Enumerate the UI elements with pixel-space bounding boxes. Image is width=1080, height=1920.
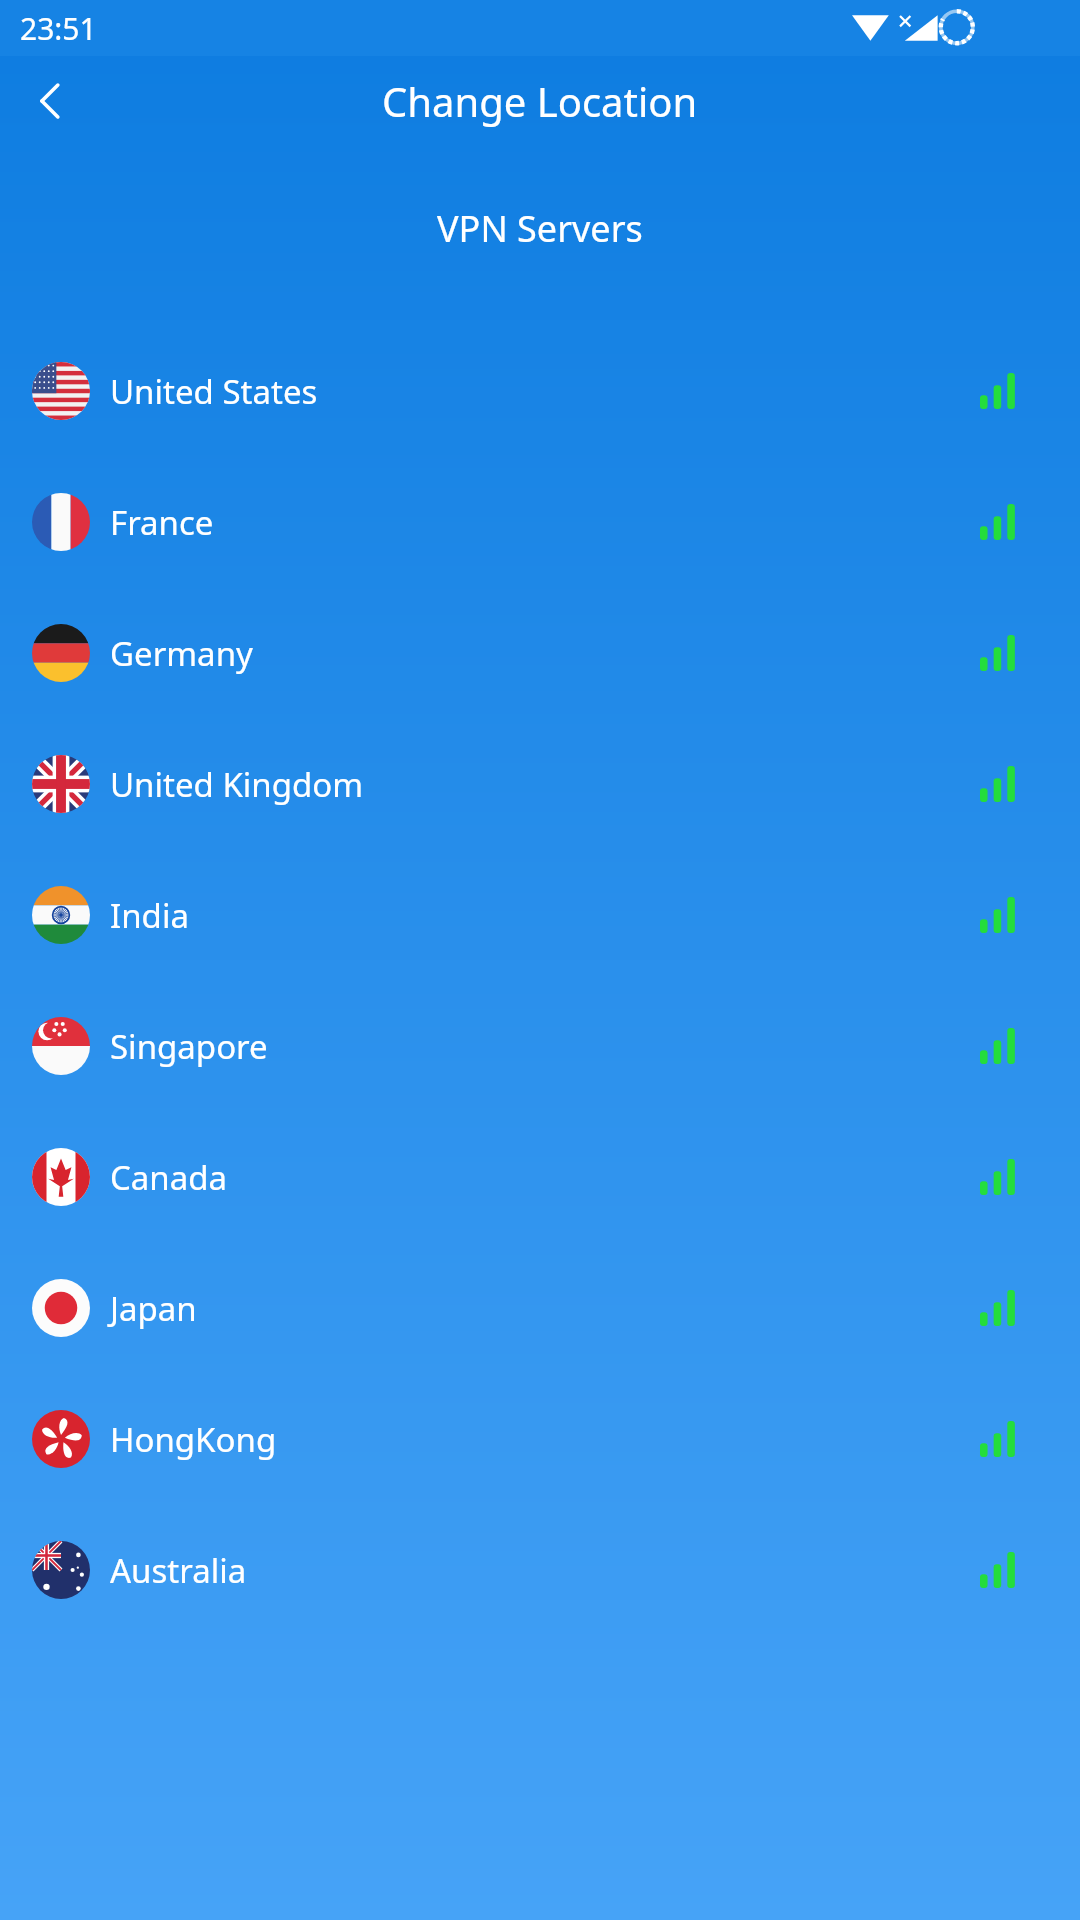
staticText: Change Location <box>382 74 698 128</box>
other: Signal strength <box>980 1028 1022 1064</box>
button[interactable]: France <box>0 456 1080 587</box>
button[interactable]: Back <box>18 68 84 134</box>
other: Signal strength <box>980 1159 1022 1195</box>
other: Signal strength <box>980 635 1022 671</box>
staticText: Australia <box>110 1548 247 1593</box>
staticText: Singapore <box>110 1024 268 1069</box>
button[interactable]: Japan <box>0 1242 1080 1373</box>
other: Signal strength <box>980 766 1022 802</box>
button[interactable]: Singapore <box>0 980 1080 1111</box>
button[interactable]: Germany <box>0 587 1080 718</box>
other: Signal strength <box>980 373 1022 409</box>
staticText: Canada <box>110 1155 228 1200</box>
staticText: VPN Servers <box>437 204 643 253</box>
other: Signal strength <box>980 1290 1022 1326</box>
button[interactable]: Canada <box>0 1111 1080 1242</box>
staticText: 23:51 <box>20 8 97 49</box>
other: Signal strength <box>980 1552 1022 1588</box>
button[interactable]: United Kingdom <box>0 718 1080 849</box>
staticText: France <box>110 500 214 545</box>
other: Signal strength <box>980 504 1022 540</box>
staticText: HongKong <box>110 1417 277 1462</box>
button[interactable]: HongKong <box>0 1373 1080 1504</box>
button[interactable]: India <box>0 849 1080 980</box>
staticText: United States <box>110 369 318 414</box>
staticText: Japan <box>110 1286 197 1331</box>
other: Signal strength <box>980 1421 1022 1457</box>
staticText: Germany <box>110 631 253 676</box>
staticText: United Kingdom <box>110 762 364 807</box>
button[interactable]: United States <box>0 325 1080 456</box>
button[interactable]: Australia <box>0 1504 1080 1635</box>
other: Signal strength <box>980 897 1022 933</box>
staticText: India <box>110 893 189 938</box>
